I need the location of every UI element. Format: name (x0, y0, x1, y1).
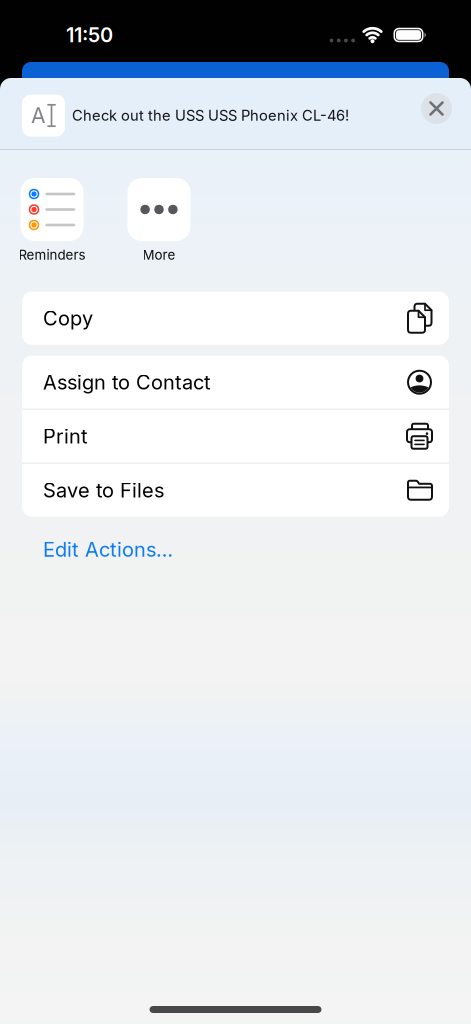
button[interactable]: Close (421, 93, 452, 124)
button[interactable]: Edit Actions… (43, 538, 173, 561)
staticText: Check out the USS USS Phoenix CL-46! (72, 107, 349, 124)
staticText: Assign to Contact (43, 370, 211, 394)
staticText: Copy (43, 306, 93, 330)
button[interactable]: Reminders (5, 178, 99, 263)
staticText: Print (43, 424, 88, 448)
staticText: More (142, 247, 175, 263)
staticText: A (31, 103, 46, 128)
button[interactable]: Print (22, 410, 449, 463)
button[interactable]: Copy (22, 292, 449, 345)
staticText: Edit Actions… (43, 538, 173, 561)
staticText: Reminders (18, 247, 85, 263)
staticText: Save to Files (43, 478, 164, 502)
button[interactable]: Assign to Contact (22, 356, 449, 409)
button[interactable]: Save to Files (22, 464, 449, 517)
staticText: 11:50 (66, 23, 113, 47)
button[interactable]: More (112, 178, 206, 263)
